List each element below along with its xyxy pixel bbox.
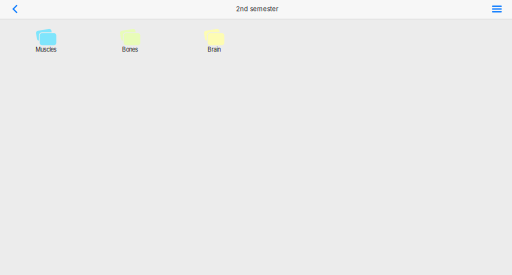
staticText: 2nd semester bbox=[236, 5, 278, 13]
button[interactable]: Muscles bbox=[4, 30, 88, 56]
staticText: Muscles bbox=[35, 46, 56, 53]
staticText: Bones bbox=[122, 46, 138, 53]
button[interactable]: Brain bbox=[172, 30, 256, 56]
button[interactable]: Bones bbox=[88, 30, 172, 56]
button[interactable]: Back bbox=[0, 0, 38, 18]
staticText: Brain bbox=[207, 46, 220, 53]
button[interactable]: Menu bbox=[476, 0, 512, 18]
